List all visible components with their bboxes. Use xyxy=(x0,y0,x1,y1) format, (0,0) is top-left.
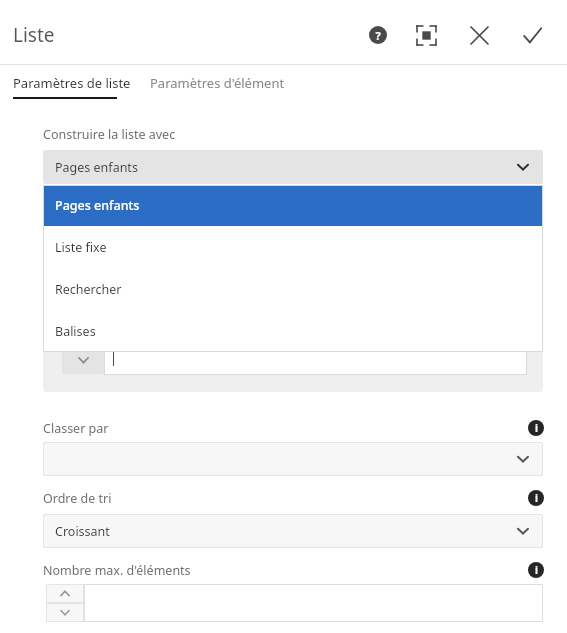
staticText: i xyxy=(535,491,538,505)
button[interactable]: Pages enfants xyxy=(43,150,543,184)
button[interactable]: Liste fixe xyxy=(43,226,543,268)
staticText: Croissant xyxy=(55,523,110,540)
button[interactable]: Fermer xyxy=(463,19,495,51)
staticText: Balises xyxy=(55,323,96,340)
staticText: Rechercher xyxy=(55,281,122,298)
staticText: Liste xyxy=(13,22,55,48)
staticText: ? xyxy=(375,28,381,43)
staticText: i xyxy=(535,421,538,435)
button[interactable]: Paramètres d'élément xyxy=(150,70,285,96)
staticText: Ordre de tri xyxy=(43,490,112,507)
button[interactable]: Informations Nombre max xyxy=(527,561,545,579)
button[interactable]: Informations Ordre de tri xyxy=(527,489,545,507)
staticText: i xyxy=(535,563,538,577)
staticText: Liste fixe xyxy=(55,239,107,256)
button[interactable]: Paramètres de liste xyxy=(13,70,131,96)
button[interactable] xyxy=(43,442,543,476)
staticText: Nombre max. d'éléments xyxy=(43,562,191,579)
button[interactable]: Pages enfants xyxy=(43,185,543,226)
button[interactable]: Croissant xyxy=(43,514,543,548)
button[interactable]: Aide xyxy=(362,19,394,51)
staticText: Pages enfants xyxy=(55,159,138,176)
button[interactable]: Augmenter xyxy=(46,584,84,603)
staticText: Paramètres d'élément xyxy=(150,74,285,92)
button[interactable] xyxy=(62,346,104,374)
staticText: Classer par xyxy=(43,420,109,437)
button[interactable]: Diminuer xyxy=(46,603,84,622)
button[interactable]: Valider xyxy=(516,19,548,51)
button[interactable] xyxy=(84,584,543,622)
button[interactable]: Balises xyxy=(43,310,543,352)
staticText: Paramètres de liste xyxy=(13,74,131,92)
button[interactable]: Plein écran xyxy=(410,19,442,51)
staticText: Construire la liste avec xyxy=(43,126,176,143)
staticText: Pages enfants xyxy=(55,197,140,214)
button[interactable]: Rechercher xyxy=(43,268,543,310)
button[interactable]: Informations Classer par xyxy=(527,419,545,437)
